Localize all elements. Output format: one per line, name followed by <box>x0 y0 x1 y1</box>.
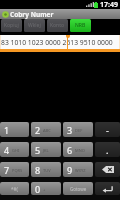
button[interactable]: Gotowe <box>63 182 93 195</box>
button[interactable]: Wklej <box>24 19 45 32</box>
staticText: 17:49 <box>100 0 118 9</box>
staticText: 5 <box>35 144 41 156</box>
staticText: MNO <box>75 148 85 153</box>
button[interactable]: 1 <box>0 122 29 137</box>
staticText: JKL <box>43 148 49 153</box>
button[interactable]: 6 <box>63 142 93 157</box>
button[interactable]: 4 <box>0 142 29 157</box>
staticText: PQRS <box>12 168 23 173</box>
staticText: Gotowe <box>70 186 87 192</box>
staticText: ABC <box>43 128 51 133</box>
staticText: Cobry Numer <box>10 10 54 19</box>
button[interactable]: App icon <box>1 10 10 19</box>
button[interactable]: Enter <box>95 182 120 195</box>
staticText: 4 <box>4 144 10 156</box>
staticText: 1 <box>4 124 10 136</box>
button[interactable]: 2 <box>31 122 61 137</box>
button[interactable]: 9 <box>63 162 93 177</box>
staticText: - <box>106 124 109 136</box>
button[interactable]: *#( <box>0 182 29 195</box>
button[interactable]: NRB <box>70 19 91 32</box>
button[interactable]: 7 <box>0 162 29 177</box>
staticText: + <box>43 187 46 192</box>
staticText: 2 <box>35 124 41 136</box>
staticText: *#( <box>11 186 18 192</box>
staticText: Kopiuj <box>4 22 19 29</box>
button[interactable]: 83 1010 1023 0000 2613 9510 0000 <box>0 35 120 49</box>
button[interactable]: Konto <box>47 19 68 32</box>
staticText: 7 <box>4 164 10 176</box>
button[interactable]: - <box>95 122 120 137</box>
button[interactable]: 8 <box>31 162 61 177</box>
staticText: 3 <box>67 124 73 136</box>
staticText: . <box>106 144 109 156</box>
button[interactable]: Kopiuj <box>1 19 22 32</box>
staticText: 6 <box>67 144 73 156</box>
other: Signal strength <box>86 2 92 7</box>
button[interactable]: 0 <box>31 182 61 195</box>
button[interactable]: Delete <box>95 162 120 177</box>
staticText: Konto <box>50 22 65 29</box>
staticText: 8 <box>35 164 41 176</box>
button[interactable]: 5 <box>31 142 61 157</box>
staticText: GHI <box>12 148 20 153</box>
staticText: NRB <box>75 22 86 29</box>
staticText: 83 1010 1023 0000 2613 9510 0000 <box>1 38 113 47</box>
staticText: 9 <box>67 164 73 176</box>
button[interactable]: 3 <box>63 122 93 137</box>
staticText: 0 <box>35 183 41 195</box>
staticText: DEF <box>75 128 83 133</box>
staticText: Wklej <box>28 22 41 29</box>
staticText: WXYZ <box>75 168 86 173</box>
staticText: TUV <box>43 168 51 173</box>
other: Battery <box>94 2 98 8</box>
button[interactable]: . <box>95 142 120 157</box>
